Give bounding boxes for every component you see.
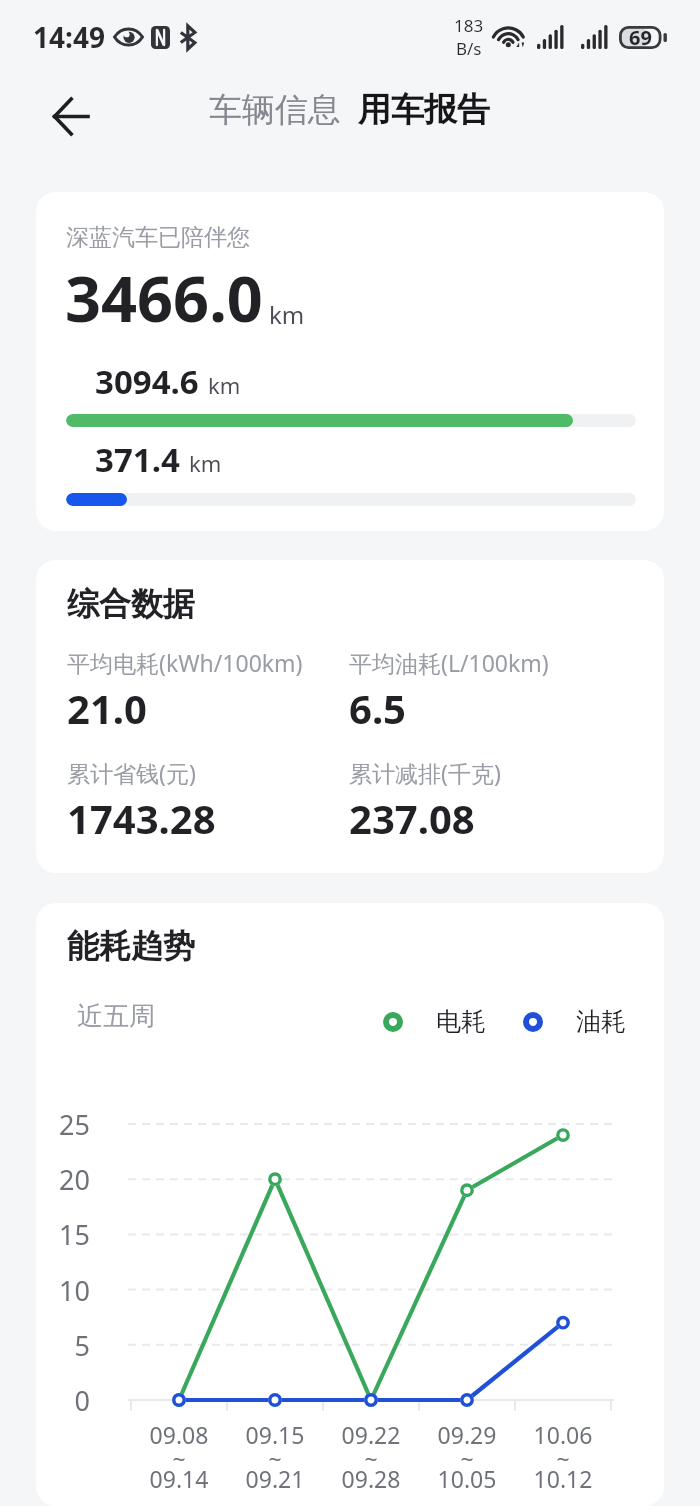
staticText: 5 (36, 1327, 90, 1364)
staticText: 电耗 (436, 1006, 486, 1037)
staticText: 3466.0 (65, 255, 263, 341)
staticText: 09.08 (131, 1419, 227, 1450)
staticText: 10.12 (515, 1463, 611, 1494)
staticText: ~ (227, 1443, 323, 1474)
staticText: km (189, 448, 222, 478)
staticText: 能耗趋势 (67, 926, 195, 966)
staticText: 累计减排(千克) (349, 757, 501, 788)
staticText: 累计省钱(元) (67, 757, 196, 788)
staticText: 近五周 (77, 1000, 155, 1033)
staticText: ~ (131, 1443, 227, 1474)
staticText: 09.15 (227, 1419, 323, 1450)
staticText: ~ (515, 1443, 611, 1474)
staticText: 09.29 (419, 1419, 515, 1450)
staticText: 用车报告 (358, 89, 490, 131)
staticText: 平均油耗(L/100km) (349, 647, 549, 678)
staticText: 371.4 (95, 437, 180, 482)
staticText: 25 (36, 1106, 90, 1143)
button[interactable]: 车辆信息 (209, 89, 341, 131)
staticText: 09.22 (323, 1419, 419, 1450)
staticText: 237.08 (349, 791, 475, 845)
button[interactable]: 能耗趋势 (36, 903, 664, 1506)
staticText: ~ (419, 1443, 515, 1474)
button[interactable]: 深蓝汽车已陪伴您 (36, 192, 664, 531)
staticText: 平均电耗(kWh/100km) (67, 647, 303, 678)
staticText: 15 (36, 1216, 90, 1253)
staticText: 3094.6 (95, 359, 199, 404)
button[interactable]: 油耗 (523, 1006, 626, 1037)
staticText: 油耗 (576, 1006, 626, 1037)
staticText: 09.14 (131, 1463, 227, 1494)
staticText: 20 (36, 1161, 90, 1198)
staticText: 车辆信息 (209, 89, 341, 131)
staticText: 0 (36, 1382, 90, 1419)
button[interactable]: Back (44, 90, 96, 142)
staticText: 21.0 (67, 681, 147, 735)
staticText: 10 (36, 1272, 90, 1309)
staticText: 10.05 (419, 1463, 515, 1494)
staticText: 10.06 (515, 1419, 611, 1450)
staticText: ~ (323, 1443, 419, 1474)
staticText: 6.5 (349, 681, 406, 735)
staticText: 综合数据 (67, 584, 195, 624)
staticText: B/s (456, 37, 482, 60)
staticText: 69 (629, 24, 652, 51)
staticText: 09.21 (227, 1463, 323, 1494)
staticText: 深蓝汽车已陪伴您 (66, 223, 250, 252)
staticText: km (208, 370, 241, 400)
button[interactable]: 电耗 (383, 1006, 486, 1037)
staticText: 14:49 (33, 18, 105, 56)
staticText: 09.28 (323, 1463, 419, 1494)
button[interactable]: 综合数据 (36, 560, 664, 873)
button[interactable]: 用车报告 (358, 89, 490, 131)
staticText: 183 (454, 14, 484, 37)
staticText: 1743.28 (67, 791, 216, 845)
staticText: km (269, 298, 305, 331)
